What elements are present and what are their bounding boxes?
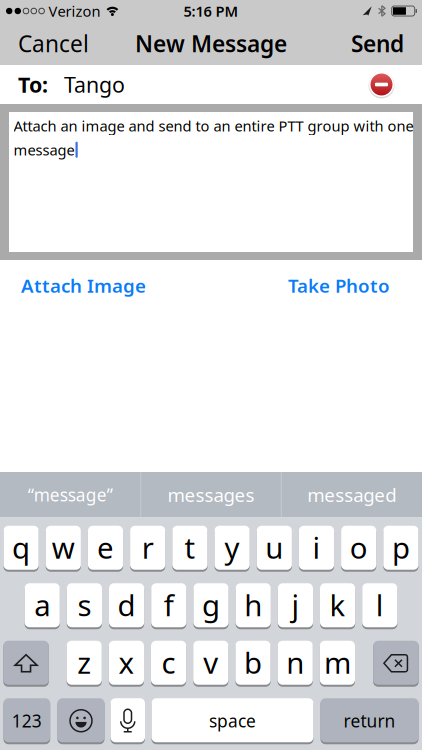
staticText: 123 bbox=[12, 709, 42, 732]
staticText: Verizon bbox=[48, 1, 100, 21]
button[interactable]: “message” bbox=[0, 472, 140, 517]
staticText: messaged bbox=[307, 482, 396, 507]
staticText: Take Photo bbox=[288, 273, 390, 298]
staticText: f bbox=[164, 585, 174, 624]
staticText: x bbox=[118, 643, 134, 682]
button[interactable]: t bbox=[172, 526, 207, 571]
staticText: a bbox=[34, 585, 50, 624]
button[interactable]: Shift bbox=[3, 641, 49, 686]
button[interactable]: h bbox=[236, 583, 271, 628]
button[interactable]: Cancel bbox=[0, 28, 89, 58]
button[interactable]: x bbox=[109, 641, 144, 686]
button[interactable]: Attach Image bbox=[0, 273, 146, 298]
staticText: j bbox=[291, 585, 299, 624]
button[interactable]: messaged bbox=[282, 472, 422, 517]
button[interactable]: p bbox=[383, 526, 418, 571]
button[interactable]: Delete bbox=[373, 641, 419, 686]
staticText: v bbox=[203, 643, 218, 682]
staticText: k bbox=[330, 585, 346, 624]
button[interactable]: f bbox=[151, 583, 186, 628]
button[interactable]: w bbox=[46, 526, 81, 571]
staticText: Attach Image bbox=[21, 273, 146, 298]
button[interactable]: e bbox=[88, 526, 123, 571]
button[interactable]: b bbox=[235, 641, 271, 686]
button[interactable]: Remove recipient bbox=[368, 71, 395, 98]
staticText: b bbox=[244, 643, 262, 682]
button[interactable]: i bbox=[299, 526, 334, 571]
staticText: Cancel bbox=[18, 28, 89, 58]
staticText: i bbox=[312, 528, 320, 567]
staticText: space bbox=[209, 709, 256, 732]
staticText: message bbox=[13, 140, 74, 159]
staticText: “message” bbox=[28, 483, 113, 506]
staticText: n bbox=[286, 643, 304, 682]
staticText: return bbox=[343, 709, 395, 732]
button[interactable]: o bbox=[341, 526, 376, 571]
staticText: s bbox=[77, 585, 91, 624]
staticText: Tango bbox=[64, 70, 125, 99]
button[interactable]: a bbox=[25, 583, 60, 628]
staticText: g bbox=[202, 585, 220, 624]
staticText: w bbox=[52, 528, 75, 567]
button[interactable]: u bbox=[257, 526, 292, 571]
staticText: e bbox=[97, 528, 114, 567]
button[interactable]: c bbox=[151, 641, 186, 686]
staticText: c bbox=[162, 643, 176, 682]
staticText: p bbox=[392, 528, 410, 567]
button[interactable]: j bbox=[278, 583, 313, 628]
button[interactable]: l bbox=[362, 583, 397, 628]
button[interactable]: z bbox=[67, 641, 102, 686]
button[interactable]: space bbox=[151, 698, 313, 743]
button[interactable]: Emoji bbox=[57, 698, 104, 743]
staticText: y bbox=[225, 528, 240, 567]
button[interactable]: d bbox=[109, 583, 144, 628]
button[interactable]: Send bbox=[351, 28, 422, 58]
staticText: l bbox=[376, 585, 384, 624]
button[interactable]: y bbox=[214, 526, 250, 571]
button[interactable]: g bbox=[193, 583, 229, 628]
staticText: To: bbox=[18, 70, 48, 99]
staticText: q bbox=[12, 528, 30, 567]
staticText: r bbox=[142, 528, 154, 567]
button[interactable]: v bbox=[193, 641, 228, 686]
button[interactable]: k bbox=[320, 583, 355, 628]
button[interactable]: Take Photo bbox=[288, 273, 422, 298]
button[interactable]: s bbox=[67, 583, 102, 628]
staticText: messages bbox=[167, 482, 254, 507]
staticText: t bbox=[184, 528, 195, 567]
button[interactable]: n bbox=[278, 641, 313, 686]
button[interactable]: messages bbox=[141, 472, 281, 517]
button[interactable]: q bbox=[3, 526, 39, 571]
staticText: m bbox=[324, 643, 351, 682]
staticText: z bbox=[77, 643, 91, 682]
staticText: 5:16 PM bbox=[183, 1, 238, 21]
button[interactable]: Return bbox=[320, 698, 418, 743]
button[interactable]: r bbox=[130, 526, 165, 571]
staticText: New Message bbox=[135, 28, 287, 58]
button[interactable]: Numbers bbox=[3, 698, 50, 743]
staticText: Attach an image and send to an entire PT… bbox=[13, 116, 413, 135]
staticText: h bbox=[244, 585, 262, 624]
staticText: d bbox=[118, 585, 136, 624]
staticText: o bbox=[350, 528, 368, 567]
staticText: Send bbox=[351, 28, 404, 58]
staticText: u bbox=[265, 528, 283, 567]
button[interactable]: m bbox=[320, 641, 355, 686]
button[interactable]: Dictate bbox=[110, 698, 145, 743]
